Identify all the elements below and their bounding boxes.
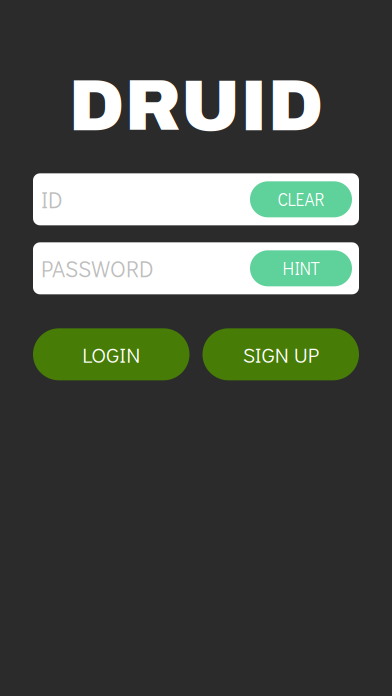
staticText: CLEAR [277, 188, 324, 211]
staticText: PASSWORD [41, 253, 154, 283]
textField[interactable]: PASSWORD [33, 242, 359, 294]
button[interactable]: Hint [250, 250, 352, 286]
button[interactable]: LOGIN [33, 328, 189, 380]
button[interactable]: Clear [250, 181, 352, 217]
staticText: LOGIN [82, 340, 140, 368]
button[interactable]: SIGN UP [202, 328, 359, 380]
staticText: DRUID [68, 67, 323, 145]
textField[interactable]: ID [33, 173, 359, 225]
staticText: HINT [282, 257, 319, 280]
staticText: SIGN UP [243, 340, 319, 368]
staticText: ID [41, 184, 63, 214]
